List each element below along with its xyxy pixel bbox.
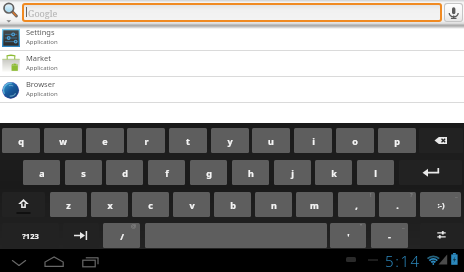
staticText: Settings xyxy=(26,27,55,37)
staticText: ?123 xyxy=(22,231,39,241)
button[interactable]: Enter xyxy=(399,160,462,185)
button[interactable]: a xyxy=(23,160,60,185)
button[interactable]: n xyxy=(255,192,292,217)
staticText: Market xyxy=(26,53,52,63)
staticText: x xyxy=(107,199,113,211)
button[interactable]: Backspace xyxy=(419,128,463,153)
staticText: Google xyxy=(28,7,58,19)
staticText: l xyxy=(374,167,377,179)
staticText: / xyxy=(120,230,124,242)
button[interactable]: l xyxy=(357,160,394,185)
staticText: ' xyxy=(347,230,350,242)
button[interactable]: c xyxy=(132,192,169,217)
button[interactable]: :-) xyxy=(420,192,461,217)
button[interactable]: Shift xyxy=(2,192,45,217)
button[interactable]: Google xyxy=(24,5,440,20)
button[interactable]: Home xyxy=(44,249,65,272)
staticText: p xyxy=(394,135,400,147)
staticText: v xyxy=(189,199,195,211)
button[interactable]: i xyxy=(294,128,332,153)
staticText: Browser xyxy=(26,79,56,89)
button[interactable]: p xyxy=(378,128,416,153)
staticText: ! xyxy=(370,192,372,199)
staticText: i xyxy=(312,135,315,147)
staticText: . xyxy=(396,199,399,211)
staticText: g xyxy=(206,167,212,179)
button[interactable]: Voice search xyxy=(445,4,462,21)
staticText: y xyxy=(227,135,233,147)
staticText: _ xyxy=(402,223,405,230)
button[interactable]: r xyxy=(127,128,165,153)
staticText: j xyxy=(291,167,294,179)
button[interactable]: z xyxy=(50,192,87,217)
button[interactable]: v xyxy=(173,192,210,217)
staticText: s xyxy=(81,167,86,179)
staticText: z xyxy=(66,199,71,211)
button[interactable]: - xyxy=(371,223,408,248)
button[interactable]: Settings xyxy=(0,25,464,51)
staticText: h xyxy=(248,167,254,179)
button[interactable]: w xyxy=(44,128,82,153)
button[interactable]: Browser xyxy=(0,77,464,103)
button[interactable]: f xyxy=(148,160,185,185)
staticText: k xyxy=(331,167,337,179)
button[interactable]: / xyxy=(103,223,140,248)
staticText: Application xyxy=(26,38,58,46)
button[interactable]: q xyxy=(2,128,40,153)
button[interactable]: k xyxy=(315,160,352,185)
staticText: c xyxy=(148,199,153,211)
staticText: q xyxy=(18,135,24,147)
button[interactable]: Keyboard settings xyxy=(420,223,463,248)
button[interactable]: ?123 xyxy=(2,223,59,248)
button[interactable]: g xyxy=(190,160,227,185)
button[interactable]: b xyxy=(214,192,251,217)
staticText: f xyxy=(165,167,169,179)
staticText: d xyxy=(122,167,128,179)
button[interactable]: o xyxy=(336,128,374,153)
staticText: @ xyxy=(131,223,137,230)
button[interactable]: e xyxy=(86,128,124,153)
staticText: a xyxy=(39,167,45,179)
button[interactable]: j xyxy=(274,160,311,185)
staticText: w xyxy=(59,135,67,147)
button[interactable]: h xyxy=(232,160,269,185)
staticText: n xyxy=(271,199,277,211)
button[interactable]: , xyxy=(338,192,375,217)
staticText: t xyxy=(186,135,190,147)
staticText: o xyxy=(352,135,358,147)
button[interactable]: u xyxy=(252,128,290,153)
button[interactable]: y xyxy=(211,128,249,153)
button[interactable]: Market xyxy=(0,51,464,77)
button[interactable]: s xyxy=(65,160,102,185)
button[interactable]: m xyxy=(296,192,333,217)
staticText: - xyxy=(388,230,391,242)
staticText: e xyxy=(102,135,108,147)
button[interactable]: Tab xyxy=(63,223,99,248)
staticText: , xyxy=(355,199,358,211)
staticText: :-) xyxy=(437,200,445,210)
button[interactable]: t xyxy=(169,128,207,153)
staticText: Application xyxy=(26,90,58,98)
staticText: ? xyxy=(410,192,413,199)
staticText: b xyxy=(230,199,236,211)
staticText: " xyxy=(360,223,363,230)
button[interactable]: Recent apps xyxy=(82,249,102,272)
staticText: m xyxy=(310,199,319,211)
button[interactable]: d xyxy=(106,160,143,185)
button[interactable]: ' xyxy=(330,223,366,248)
staticText: r xyxy=(144,135,149,147)
staticText: Application xyxy=(26,64,58,72)
button[interactable]: Search xyxy=(0,0,22,24)
button[interactable]: x xyxy=(91,192,128,217)
staticText: u xyxy=(268,135,274,147)
button[interactable]: . xyxy=(379,192,416,217)
button[interactable]: Hide keyboard xyxy=(10,249,28,272)
staticText: _ xyxy=(455,192,458,199)
staticText: 5:14 xyxy=(385,251,421,271)
